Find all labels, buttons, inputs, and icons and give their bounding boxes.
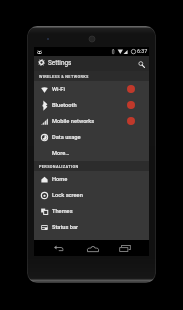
staticText: PERSONALIZATION bbox=[39, 164, 79, 169]
staticText: Wi-Fi bbox=[52, 86, 65, 93]
staticText: 6:37 bbox=[137, 48, 148, 54]
staticText: Home bbox=[52, 176, 68, 183]
staticText: Themes bbox=[52, 208, 73, 215]
button[interactable]: Search bbox=[135, 58, 147, 70]
button[interactable]: Recent apps bbox=[117, 241, 132, 256]
button[interactable]: Data usage bbox=[34, 129, 149, 145]
staticText: WIRELESS & NETWORKS bbox=[39, 74, 89, 79]
button[interactable]: Lock screen bbox=[34, 187, 149, 203]
staticText: Mobile networks bbox=[52, 118, 95, 125]
button[interactable]: Wi-Fi bbox=[34, 81, 149, 97]
staticText: Settings bbox=[48, 59, 72, 67]
staticText: More… bbox=[52, 150, 70, 157]
button[interactable]: Back bbox=[51, 241, 66, 256]
staticText: Lock screen bbox=[52, 192, 83, 199]
button[interactable]: Bluetooth bbox=[34, 97, 149, 113]
staticText: Status bar bbox=[52, 224, 79, 231]
button[interactable]: Mobile networks bbox=[34, 113, 149, 129]
button[interactable]: Status bar bbox=[34, 219, 149, 235]
staticText: Bluetooth bbox=[52, 102, 77, 109]
button[interactable]: Home bbox=[85, 241, 100, 256]
staticText: Data usage bbox=[52, 134, 81, 141]
button[interactable]: Themes bbox=[34, 203, 149, 219]
button[interactable]: Home bbox=[34, 171, 149, 187]
button[interactable]: More… bbox=[34, 145, 149, 161]
